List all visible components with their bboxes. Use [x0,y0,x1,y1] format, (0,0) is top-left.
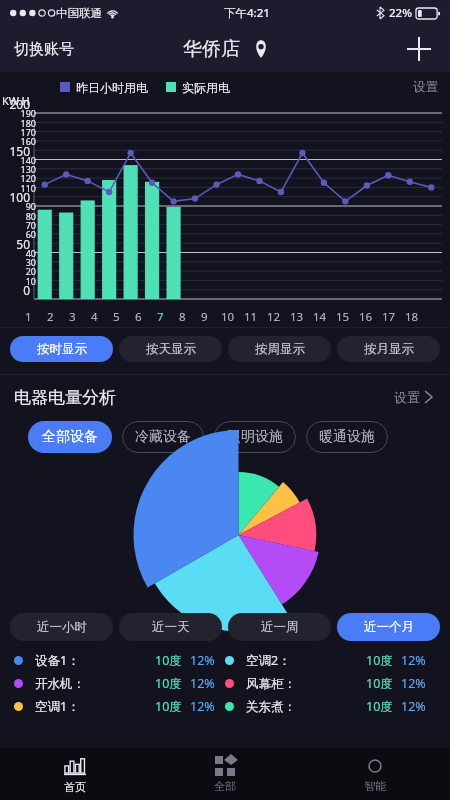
button[interactable]: 冷藏设备 [122,421,204,453]
button[interactable]: 关东煮： [225,698,436,715]
button[interactable]: 空调1： [14,698,225,715]
staticText: 设备1： [35,652,80,669]
button[interactable]: 全部设备 [28,421,112,453]
staticText: 2 [47,309,54,325]
button[interactable]: 切换账号 [10,34,78,65]
staticText: 190 [6,107,36,119]
staticText: 20 [6,265,36,277]
staticText: 170 [6,126,36,138]
staticText: 智能 [364,779,386,793]
staticText: 22% [389,5,412,21]
button[interactable]: 按时显示 [10,336,113,362]
staticText: 60 [6,228,36,240]
staticText: 15 [336,309,350,325]
staticText: 3 [69,309,76,325]
staticText: 0 [0,282,30,298]
staticText: KW.H [2,93,30,108]
staticText: 40 [6,247,36,259]
staticText: 设置 [413,79,438,95]
button[interactable]: 开水机： [14,675,225,692]
staticText: 暖通设施 [319,428,375,446]
staticText: 关东煮： [246,699,296,715]
staticText: 空调1： [35,698,80,715]
staticText: 1 [25,309,32,325]
staticText: 90 [6,200,36,212]
staticText: 4 [91,309,98,325]
staticText: 9 [201,309,208,325]
button[interactable]: 华侨店 [177,33,274,65]
staticText: 近一小时 [37,619,87,635]
staticText: 实际用电 [182,80,230,95]
staticText: 12% [401,698,426,715]
staticText: 近一周 [261,619,299,635]
staticText: 按月显示 [364,341,414,357]
staticText: 10度 [155,652,182,669]
staticText: 12% [190,698,215,715]
staticText: 50 [0,236,30,252]
staticText: 电器电量分析 [14,387,116,408]
staticText: 8 [179,309,186,325]
staticText: 5 [113,309,120,325]
button[interactable]: 近一天 [119,613,222,641]
staticText: 10度 [366,675,393,692]
staticText: 13 [290,309,304,325]
staticText: 12% [401,675,426,692]
staticText: 110 [6,182,36,194]
staticText: 昨日小时用电 [76,80,148,95]
staticText: 70 [6,219,36,231]
staticText: 切换账号 [14,40,74,59]
staticText: 下午4:21 [224,5,270,21]
staticText: 按时显示 [37,341,87,357]
button[interactable]: 风幕柜： [225,675,436,692]
staticText: 7 [157,309,164,325]
staticText: 10 [221,309,235,325]
staticText: 设置 [394,389,420,405]
staticText: 140 [6,154,36,166]
staticText: 照明设施 [227,428,283,446]
staticText: 12% [190,652,215,669]
staticText: 10度 [366,652,393,669]
button[interactable]: 按月显示 [337,336,440,362]
staticText: 近一天 [152,619,190,635]
staticText: 风幕柜： [246,676,296,692]
button[interactable]: Add [404,34,434,64]
button[interactable]: 智能 [300,748,450,800]
staticText: 中国联通 [56,6,102,20]
button[interactable]: 按周显示 [228,336,331,362]
staticText: 150 [0,143,30,159]
button[interactable]: 设置 [413,79,450,95]
staticText: 11 [244,309,258,325]
staticText: 160 [6,135,36,147]
staticText: 12% [401,652,426,669]
button[interactable]: 按天显示 [119,336,222,362]
button[interactable]: 照明设施 [214,421,296,453]
staticText: 10度 [155,675,182,692]
button[interactable]: 暖通设施 [306,421,388,453]
staticText: 冷藏设备 [135,428,191,446]
staticText: 100 [0,189,30,205]
staticText: 30 [6,256,36,268]
staticText: 16 [359,309,373,325]
staticText: 180 [6,117,36,129]
staticText: 开水机： [35,676,85,692]
staticText: 空调2： [246,652,291,669]
staticText: 14 [313,309,327,325]
button[interactable]: 空调2： [225,652,436,669]
button[interactable]: 近一个月 [337,613,440,641]
staticText: 120 [6,172,36,184]
button[interactable]: 全部 [150,748,300,800]
staticText: 全部设备 [42,428,98,446]
staticText: 18 [405,309,419,325]
button[interactable]: 近一周 [228,613,331,641]
staticText: 10度 [366,698,393,715]
staticText: 10 [6,275,36,287]
staticText: 全部 [214,779,236,793]
button[interactable]: 设置 [390,385,436,409]
staticText: 按天显示 [146,341,196,357]
button[interactable]: 近一小时 [10,613,113,641]
button[interactable]: 首页 [0,748,150,800]
staticText: 6 [135,309,142,325]
staticText: 按周显示 [255,341,305,357]
button[interactable]: 设备1： [14,652,225,669]
staticText: 80 [6,210,36,222]
